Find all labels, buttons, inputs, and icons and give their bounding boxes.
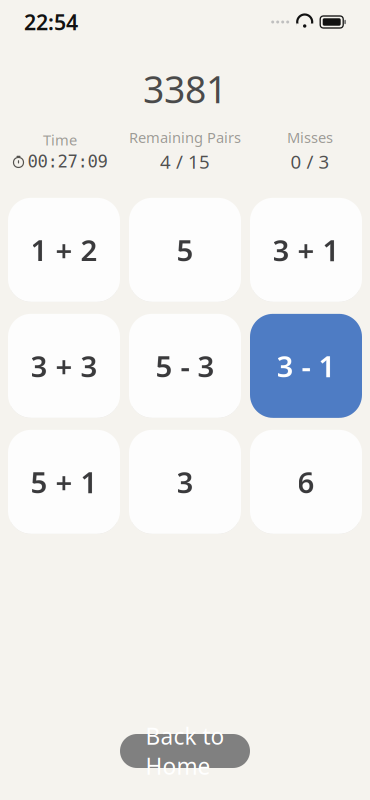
staticText: 5 - 3 [155, 346, 214, 385]
staticText: 3 + 1 [272, 230, 339, 269]
button[interactable]: 3 + 1 [250, 198, 362, 302]
staticText: 1 + 2 [30, 230, 97, 269]
button[interactable]: 5 + 1 [8, 430, 120, 534]
staticText: 3 + 3 [30, 346, 97, 385]
staticText: Time [43, 130, 77, 150]
staticText: Back to Home [145, 721, 224, 781]
button[interactable]: 6 [250, 430, 362, 534]
staticText: 4 / 15 [160, 149, 210, 174]
staticText: 3 - 1 [276, 346, 335, 385]
button[interactable]: 5 [129, 198, 241, 302]
button[interactable]: 3 [129, 430, 241, 534]
button[interactable]: Back to Home [120, 734, 250, 768]
staticText: 5 + 1 [30, 462, 97, 501]
staticText: 3381 [143, 64, 227, 114]
staticText: 6 [297, 462, 314, 501]
button[interactable]: 3 - 1 [250, 314, 362, 418]
button[interactable]: 5 - 3 [129, 314, 241, 418]
button[interactable]: 1 + 2 [8, 198, 120, 302]
staticText: 5 [176, 230, 193, 269]
staticText: Remaining Pairs [129, 128, 241, 147]
staticText: 22:54 [24, 8, 78, 36]
staticText: 0 / 3 [290, 149, 329, 174]
staticText: 00:27:09 [27, 152, 107, 171]
staticText: Misses [287, 128, 333, 147]
staticText: 3 [176, 462, 193, 501]
button[interactable]: 3 + 3 [8, 314, 120, 418]
